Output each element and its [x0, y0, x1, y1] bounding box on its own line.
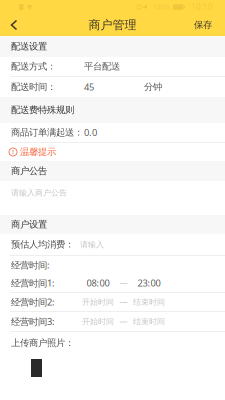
button[interactable]: 请输入商户公告: [0, 181, 225, 215]
staticText: 10:10: [191, 2, 213, 12]
staticText: 经营时间1:: [11, 277, 55, 289]
staticText: 45: [84, 81, 94, 93]
staticText: 请输入: [80, 240, 104, 249]
staticText: 商户公告: [11, 165, 47, 177]
button[interactable]: 保存: [194, 14, 225, 36]
staticText: 0.0: [84, 126, 97, 139]
staticText: 请输入商户公告: [11, 188, 67, 198]
staticText: 结束时间: [133, 297, 165, 307]
staticText: 开始时间: [82, 317, 114, 326]
staticText: 配送设置: [11, 41, 47, 52]
button[interactable]: Back: [0, 14, 28, 36]
staticText: 商户设置: [11, 219, 47, 230]
staticText: 23:00: [137, 277, 160, 289]
staticText: 经营时间:: [11, 259, 50, 271]
staticText: 上传商户照片：: [11, 337, 74, 349]
staticText: 平台配送: [84, 61, 120, 72]
button[interactable]: 配送时间：: [0, 77, 225, 97]
staticText: —: [119, 278, 127, 288]
staticText: 配送费特殊规则: [11, 104, 74, 116]
staticText: 预估人均消费：: [11, 239, 74, 250]
staticText: 温馨提示: [20, 146, 56, 158]
button[interactable]: 经营时间3:: [0, 312, 225, 331]
staticText: 08:00: [86, 277, 109, 289]
staticText: 配送时间：: [11, 81, 56, 93]
staticText: 经营时间3:: [11, 315, 55, 328]
button[interactable]: 配送方式：: [0, 57, 225, 76]
button[interactable]: 经营时间2:: [0, 293, 225, 311]
staticText: 经营时间2:: [11, 296, 55, 308]
staticText: 开始时间: [82, 297, 114, 307]
staticText: 保存: [194, 19, 212, 31]
staticText: 配送方式：: [11, 61, 56, 72]
staticText: 100%: [152, 3, 170, 11]
staticText: 商品订单满起送：: [11, 127, 83, 138]
button[interactable]: 预估人均消费：: [0, 234, 225, 255]
staticText: 分钟: [144, 81, 162, 93]
button[interactable]: 商品订单满起送：: [0, 123, 225, 142]
staticText: —: [119, 316, 127, 327]
button[interactable]: 经营时间1:: [0, 274, 225, 292]
staticText: 商户管理: [88, 18, 136, 32]
staticText: —: [119, 297, 127, 307]
staticText: 结束时间: [133, 317, 165, 326]
